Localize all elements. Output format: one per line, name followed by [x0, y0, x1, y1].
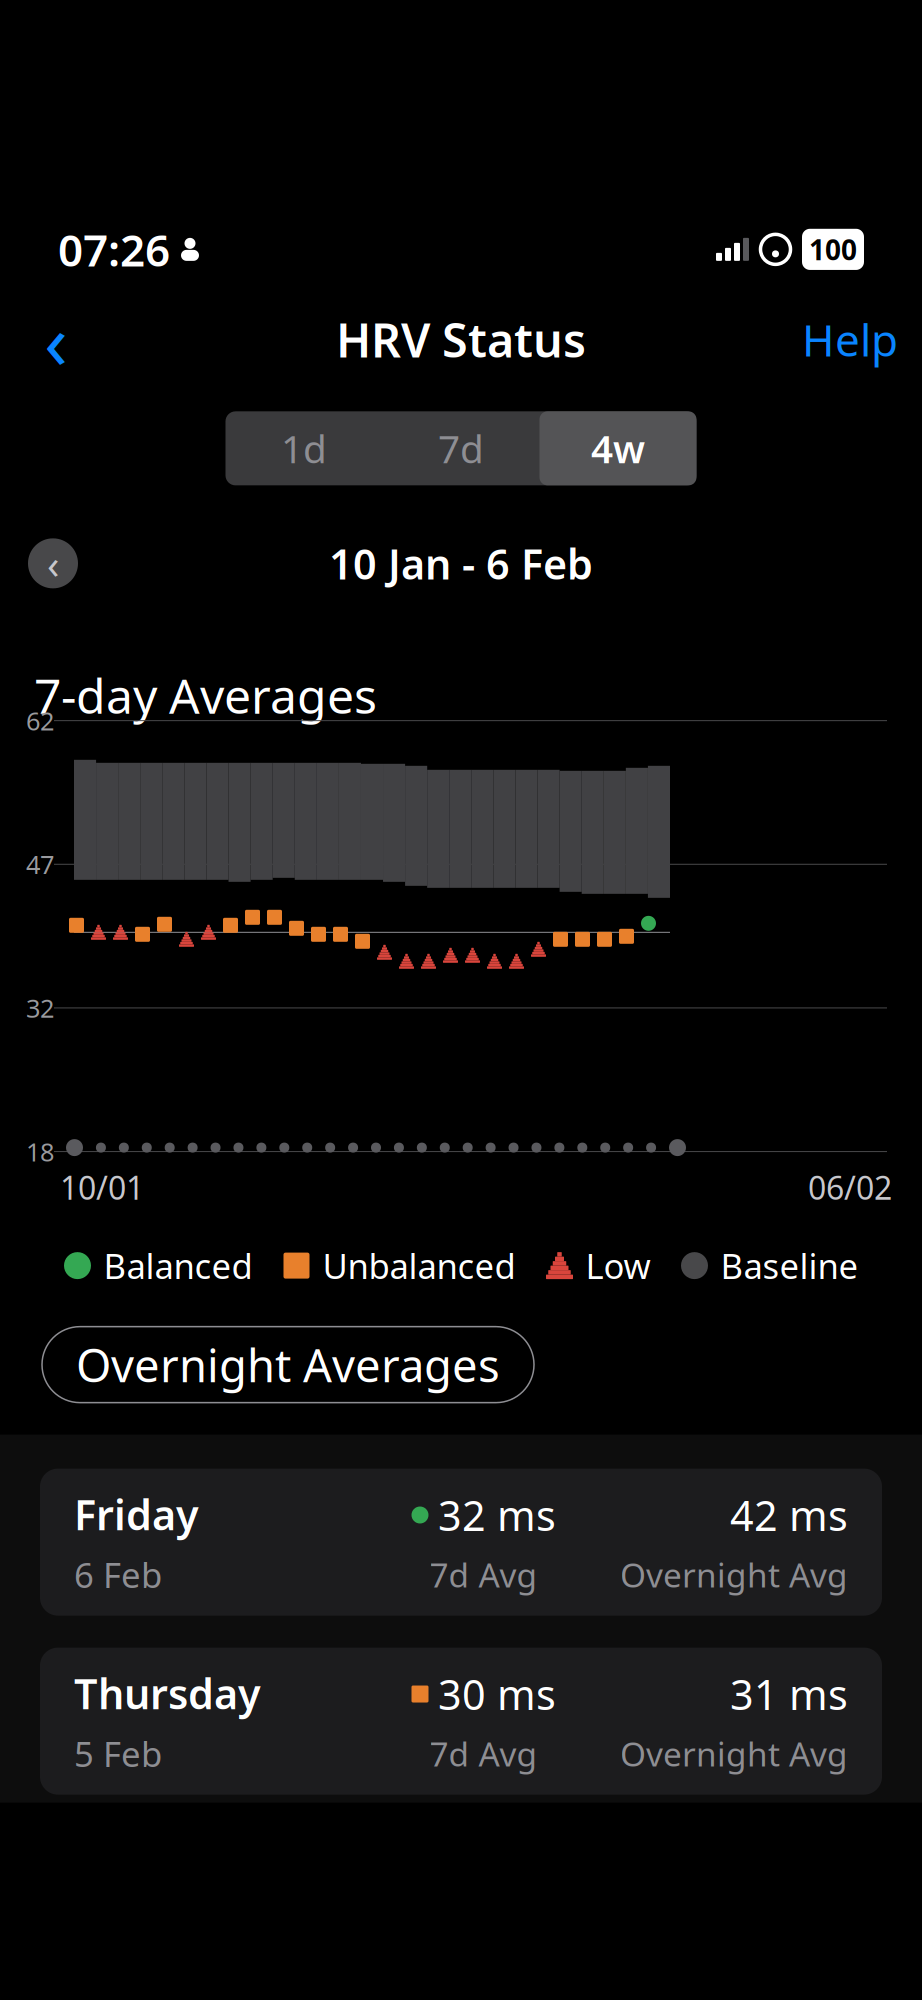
- staticText: 10 Jan - 6 Feb: [329, 536, 593, 591]
- staticText: Balanced: [103, 1243, 252, 1289]
- button[interactable]: Overnight Averages: [42, 1327, 534, 1403]
- staticText: 07:26: [58, 220, 170, 278]
- staticText: 47: [26, 847, 54, 881]
- staticText: 30 ms: [438, 1667, 556, 1721]
- staticText: 10/01: [60, 1166, 144, 1209]
- staticText: Overnight Avg: [620, 1552, 848, 1597]
- button[interactable]: Help: [802, 307, 898, 371]
- staticText: 06/02: [808, 1166, 892, 1209]
- staticText: 7d Avg: [429, 1552, 537, 1597]
- staticText: Thursday: [74, 1666, 261, 1721]
- staticText: 6 Feb: [74, 1552, 162, 1598]
- staticText: 4w: [591, 423, 645, 474]
- button[interactable]: Thursday: [40, 1648, 882, 1795]
- button[interactable]: Friday: [40, 1469, 882, 1616]
- staticText: 32 ms: [438, 1488, 556, 1542]
- staticText: 5 Feb: [74, 1731, 162, 1777]
- button[interactable]: Back: [24, 307, 88, 371]
- staticText: Unbalanced: [322, 1243, 515, 1289]
- staticText: Baseline: [720, 1243, 858, 1289]
- staticText: 31 ms: [730, 1667, 848, 1721]
- staticText: Help: [802, 310, 898, 368]
- staticText: ‹: [44, 288, 68, 391]
- button[interactable]: 7d: [382, 411, 539, 485]
- staticText: 18: [26, 1135, 54, 1168]
- staticText: 7-day Averages: [34, 663, 377, 727]
- staticText: ‹: [47, 537, 59, 590]
- staticText: HRV Status: [336, 308, 586, 370]
- button[interactable]: 4w: [539, 411, 696, 485]
- staticText: 7d: [438, 423, 484, 474]
- staticText: Overnight Avg: [620, 1731, 848, 1776]
- staticText: 62: [26, 704, 54, 737]
- staticText: 7d Avg: [429, 1731, 537, 1776]
- button[interactable]: Previous period: [28, 538, 78, 588]
- staticText: 32: [26, 991, 54, 1025]
- staticText: Friday: [74, 1487, 199, 1542]
- staticText: Overnight Averages: [76, 1334, 500, 1395]
- button[interactable]: 1d: [225, 411, 382, 485]
- staticText: Low: [585, 1243, 650, 1289]
- staticText: 1d: [281, 423, 327, 474]
- staticText: 100: [809, 231, 857, 268]
- staticText: 42 ms: [730, 1488, 848, 1542]
